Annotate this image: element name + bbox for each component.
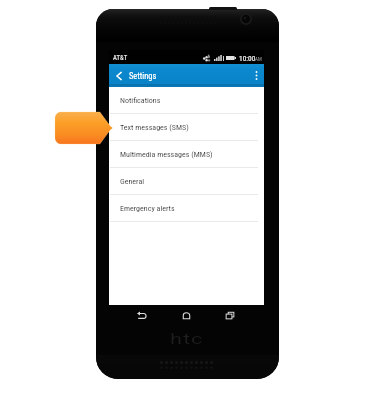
staticText: AM xyxy=(255,56,262,62)
staticText: Text messages (SMS) xyxy=(120,123,189,132)
staticText: AT&T xyxy=(113,54,128,62)
staticText: 10:00 xyxy=(239,54,256,63)
button[interactable]: Multimedia messages (MMS) xyxy=(109,141,264,168)
staticText: Settings xyxy=(129,71,157,81)
staticText: htc xyxy=(170,331,204,347)
button[interactable]: Home xyxy=(175,305,197,325)
button[interactable]: Emergency alerts xyxy=(109,195,264,222)
staticText: Notifications xyxy=(120,96,161,105)
button[interactable]: Text messages (SMS) xyxy=(109,114,264,141)
staticText: General xyxy=(120,177,145,186)
button[interactable]: Recent apps xyxy=(219,305,241,325)
button[interactable]: More options xyxy=(248,64,264,87)
staticText: Multimedia messages (MMS) xyxy=(120,150,213,159)
staticText: Emergency alerts xyxy=(120,204,175,213)
button[interactable]: Back xyxy=(131,305,153,325)
button[interactable]: Navigate up xyxy=(109,64,129,87)
button[interactable]: General xyxy=(109,168,264,195)
button[interactable]: Notifications xyxy=(109,87,264,114)
